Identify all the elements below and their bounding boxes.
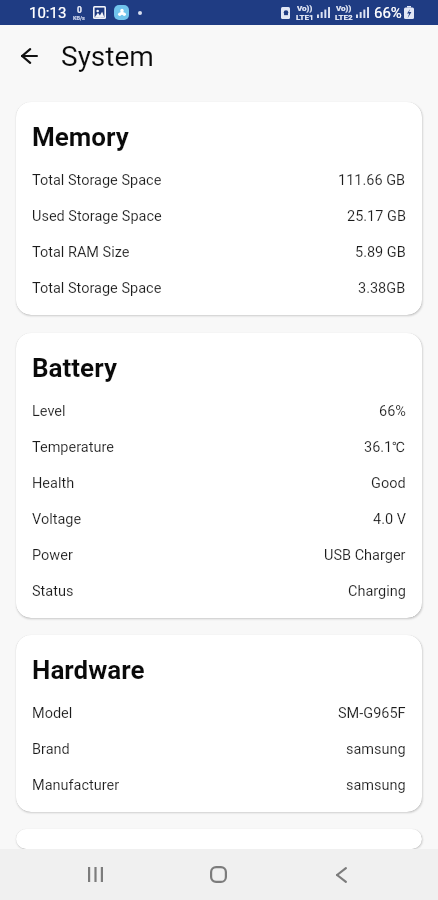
staticText: 4.0 V xyxy=(373,511,406,528)
button[interactable]: Brand xyxy=(16,731,422,767)
staticText: 3.38GB xyxy=(358,280,406,297)
staticText: Total Storage Space xyxy=(32,280,162,297)
button[interactable]: Health xyxy=(16,465,422,501)
staticText: 5.89 GB xyxy=(355,244,406,261)
staticText: 66% xyxy=(374,4,402,22)
staticText: Good xyxy=(371,475,406,492)
button[interactable]: Status xyxy=(16,573,422,609)
button[interactable]: Voltage xyxy=(16,501,422,537)
staticText: Brand xyxy=(32,741,70,758)
button[interactable]: Total Storage Space xyxy=(16,270,422,306)
staticText: 25.17 GB xyxy=(347,208,406,225)
staticText: Manufacturer xyxy=(32,777,120,794)
staticText: System xyxy=(61,40,154,73)
staticText: SM-G965F xyxy=(338,705,406,722)
button[interactable]: Power xyxy=(16,537,422,573)
button[interactable]: Recents xyxy=(71,849,119,900)
staticText: Temperature xyxy=(32,439,114,456)
staticText: USB Charger xyxy=(324,547,406,564)
staticText: Vo)) xyxy=(297,4,313,13)
staticText: Vo)) xyxy=(336,4,352,13)
staticText: Model xyxy=(32,705,73,722)
staticText: Battery xyxy=(32,353,117,383)
button[interactable]: Back xyxy=(317,849,365,900)
button[interactable]: Back xyxy=(9,36,49,76)
staticText: 0 xyxy=(77,5,82,15)
staticText: Memory xyxy=(32,122,129,152)
button[interactable]: Used Storage Space xyxy=(16,198,422,234)
staticText: Total RAM Size xyxy=(32,244,130,261)
staticText: Total Storage Space xyxy=(32,172,162,189)
button[interactable]: Home xyxy=(194,849,242,900)
button[interactable]: Model xyxy=(16,695,422,731)
staticText: KB/s xyxy=(73,15,85,21)
staticText: samsung xyxy=(346,777,406,794)
staticText: 66% xyxy=(379,403,406,420)
staticText: Charging xyxy=(348,583,406,600)
staticText: Used Storage Space xyxy=(32,208,162,225)
staticText: Status xyxy=(32,583,74,600)
button[interactable]: Temperature xyxy=(16,429,422,465)
staticText: Voltage xyxy=(32,511,82,528)
staticText: samsung xyxy=(346,741,406,758)
button[interactable]: Manufacturer xyxy=(16,767,422,803)
staticText: Health xyxy=(32,475,75,492)
staticText: Level xyxy=(32,403,66,420)
button[interactable]: Total Storage Space xyxy=(16,162,422,198)
staticText: Power xyxy=(32,547,73,564)
button[interactable]: Level xyxy=(16,393,422,429)
button[interactable]: Total RAM Size xyxy=(16,234,422,270)
staticText: Hardware xyxy=(32,655,145,685)
staticText: 111.66 GB xyxy=(338,172,406,189)
staticText: LTE1 xyxy=(296,13,314,22)
staticText: 36.1℃ xyxy=(364,439,406,456)
staticText: 10:13 xyxy=(29,4,67,22)
staticText: LTE2 xyxy=(335,13,353,22)
